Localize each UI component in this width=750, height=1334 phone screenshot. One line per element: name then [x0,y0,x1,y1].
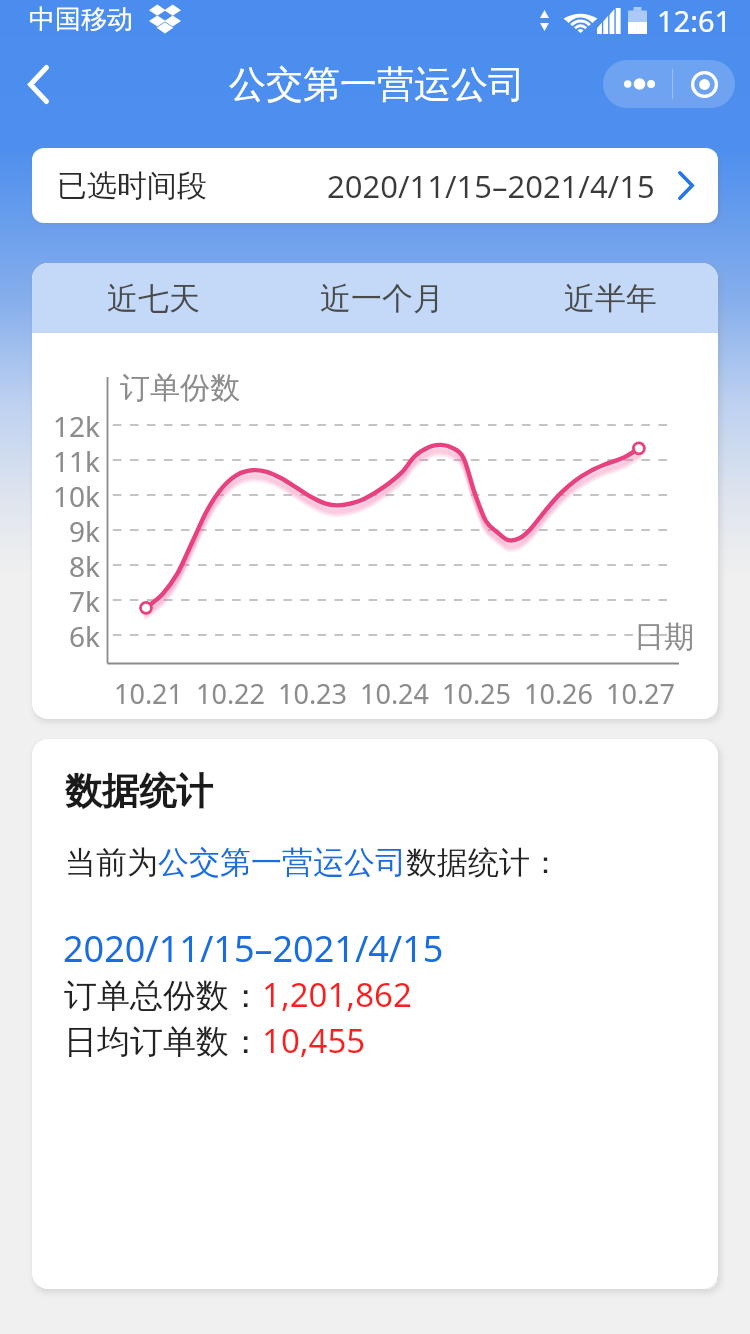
staticText: 2020/11/15–2021/4/15 [327,165,655,207]
staticText: 12k [53,407,100,443]
staticText: 公交第一营运公司 [229,61,525,108]
staticText: 12:61 [657,1,732,40]
staticText: 10.24 [360,675,430,712]
button[interactable]: 近半年 [489,263,718,333]
staticText: 10.21 [114,675,184,712]
staticText: 近一个月 [320,279,444,318]
staticText: 中国移动 [29,3,133,36]
staticText: 10.23 [278,675,348,712]
staticText: 2020/11/15–2021/4/15 [63,924,444,973]
staticText: 7k [69,582,100,618]
staticText: 6k [69,617,100,653]
button[interactable]: 已选时间段 [32,148,718,223]
staticText: 订单总份数：1,201,862 [64,972,412,1017]
staticText: 8k [69,547,100,583]
staticText: 10.27 [606,675,676,712]
staticText: 9k [69,512,100,548]
staticText: 日均订单数：10,455 [64,1018,366,1063]
staticText: 订单份数 [120,369,240,407]
staticText: 11k [53,442,100,478]
staticText: 近七天 [107,279,200,318]
staticText: 近半年 [564,279,657,318]
staticText: 当前为公交第一营运公司数据统计： [65,843,561,882]
staticText: 10k [53,477,100,513]
staticText: 日期 [634,618,694,656]
staticText: 10.25 [442,675,512,712]
button[interactable]: 近七天 [32,263,260,333]
staticText: 10.22 [196,675,266,712]
staticText: 数据统计 [65,768,213,815]
staticText: 已选时间段 [57,167,207,205]
button[interactable]: 近一个月 [260,263,489,333]
staticText: 10.26 [524,675,594,712]
button[interactable]: Close mini program [673,60,735,108]
button[interactable]: More options [603,60,672,108]
button[interactable]: Back [0,40,76,128]
